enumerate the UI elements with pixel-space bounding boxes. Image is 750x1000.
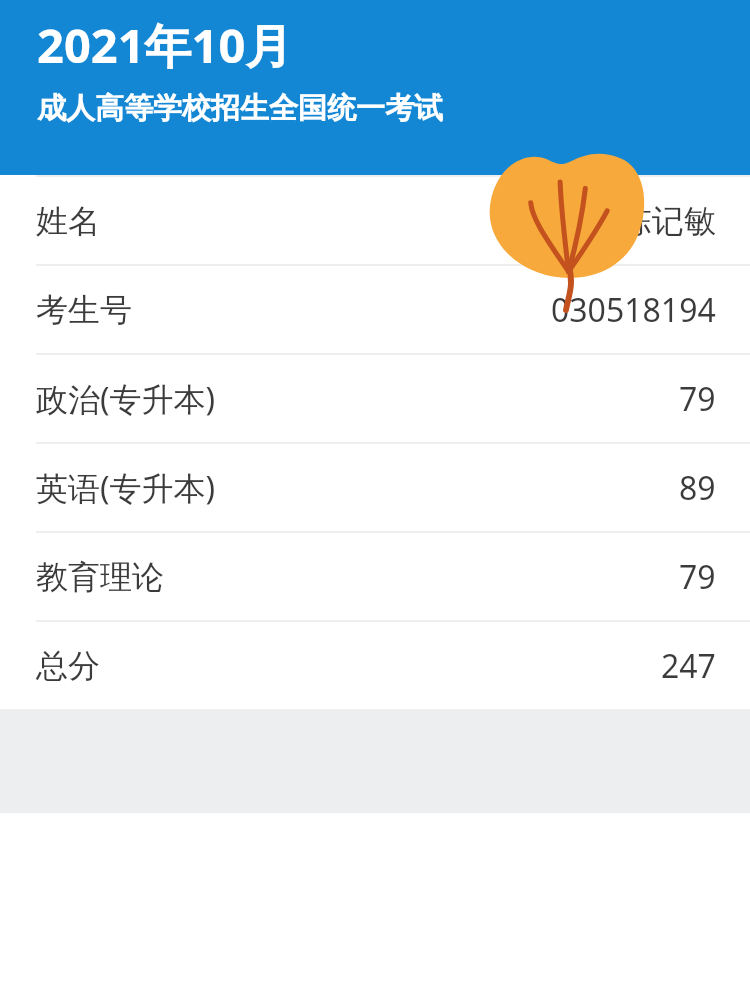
staticText: 教育理论 <box>36 557 164 597</box>
staticText: 姓名 <box>36 201 100 241</box>
staticText: 89 <box>679 466 716 510</box>
staticText: 英语(专升本) <box>36 466 216 510</box>
button[interactable]: 姓名 <box>0 177 750 264</box>
staticText: 2021年10月 <box>37 13 293 77</box>
button[interactable]: 英语(专升本) <box>0 444 750 531</box>
staticText: 成人高等学校招生全国统一考试 <box>37 90 443 127</box>
staticText: 考生号 <box>36 290 132 330</box>
button[interactable]: 考生号 <box>0 266 750 353</box>
button[interactable]: 教育理论 <box>0 533 750 620</box>
other: Ginkgo leaf sticker <box>482 150 650 310</box>
staticText: 总分 <box>36 646 100 686</box>
button[interactable]: 总分 <box>0 622 750 709</box>
staticText: 政治(专升本) <box>36 377 216 421</box>
staticText: 陈记敏 <box>620 201 716 241</box>
staticText: 030518194 <box>551 288 716 332</box>
staticText: 247 <box>661 644 716 688</box>
staticText: 79 <box>679 377 716 421</box>
staticText: 79 <box>679 555 716 599</box>
button[interactable]: 政治(专升本) <box>0 355 750 442</box>
